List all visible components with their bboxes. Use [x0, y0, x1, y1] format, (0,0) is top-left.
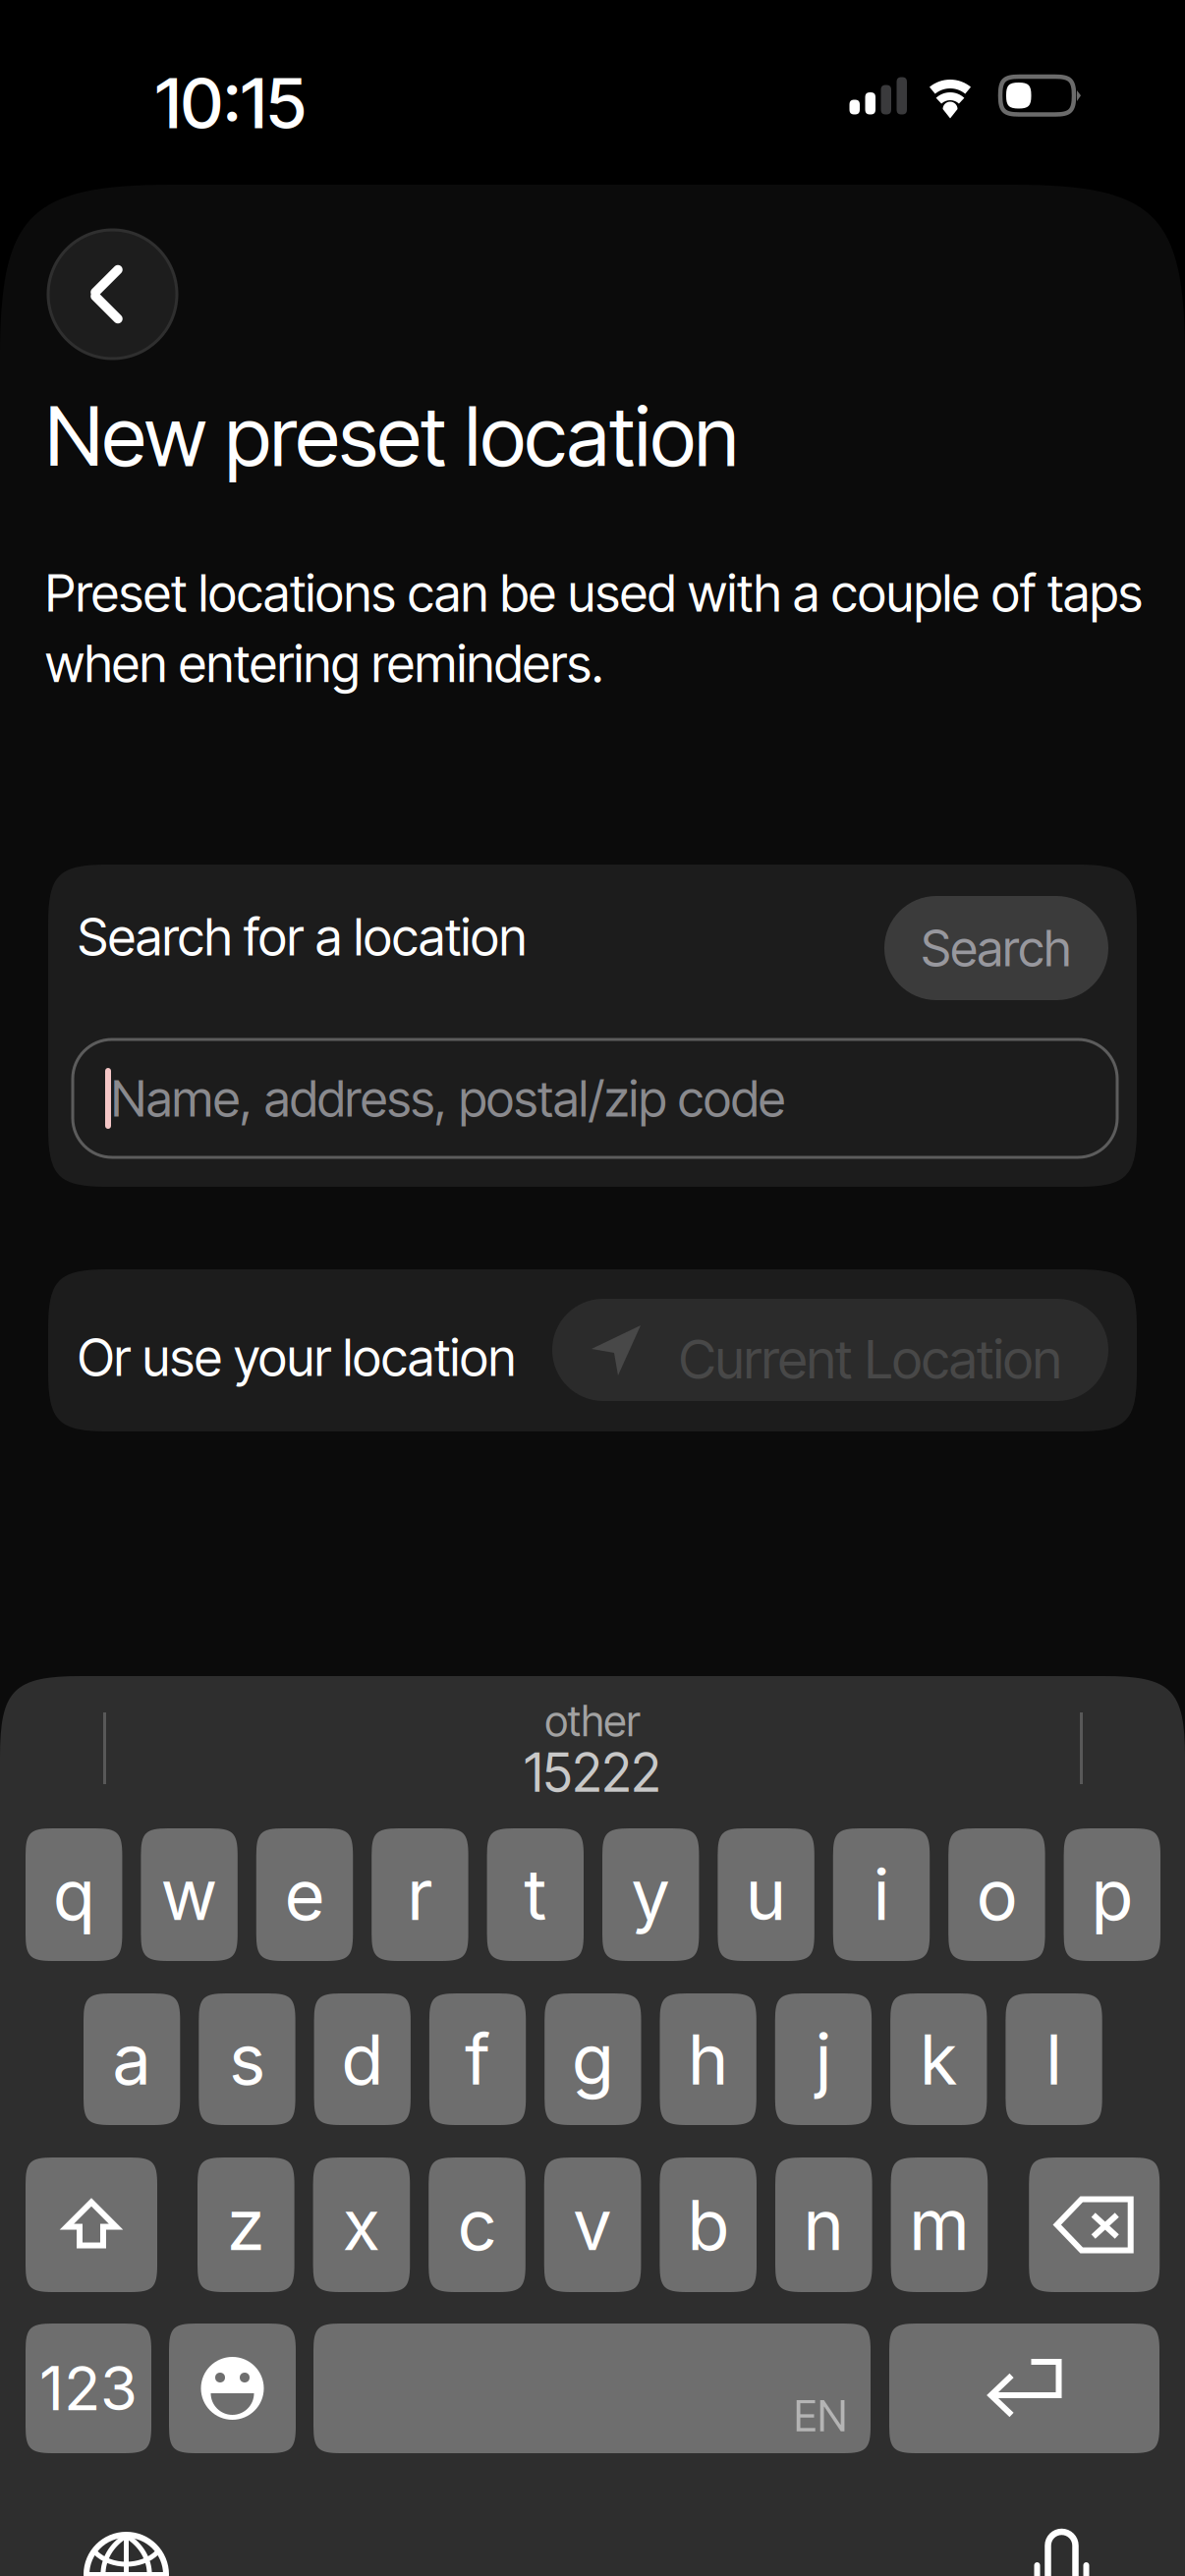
staticText: other [545, 1696, 640, 1746]
button[interactable]: Shift [26, 2157, 157, 2292]
button[interactable]: y [602, 1828, 699, 1961]
staticText: b [687, 2183, 729, 2267]
button[interactable]: u [718, 1828, 814, 1961]
staticText: l [1045, 2017, 1062, 2101]
staticText: Search [921, 918, 1072, 978]
button[interactable]: o [948, 1828, 1045, 1961]
staticText: y [631, 1853, 670, 1937]
button[interactable]: q [26, 1828, 122, 1961]
staticText: Name, address, postal/zip code [111, 1068, 785, 1128]
staticText: 123 [39, 2352, 138, 2425]
staticText: Preset locations can be used with a coup… [45, 562, 1143, 694]
button[interactable]: Dictate [1032, 2529, 1092, 2576]
button[interactable]: d [314, 1993, 411, 2125]
button[interactable]: e [256, 1828, 353, 1961]
button[interactable]: i [833, 1828, 930, 1961]
button[interactable]: 123 [26, 2324, 151, 2453]
staticText: r [407, 1853, 433, 1937]
staticText: h [687, 2017, 729, 2101]
button[interactable]: n [775, 2157, 872, 2292]
button[interactable]: r [372, 1828, 468, 1961]
button[interactable]: s [199, 1993, 295, 2125]
staticText: Or use your location [78, 1326, 516, 1388]
button[interactable]: l [1006, 1993, 1102, 2125]
button[interactable]: h [660, 1993, 756, 2125]
button[interactable]: Current Location [552, 1299, 1108, 1401]
button[interactable]: k [890, 1993, 987, 2125]
button[interactable]: z [197, 2157, 294, 2292]
button[interactable]: f [429, 1993, 526, 2125]
button[interactable]: g [545, 1993, 641, 2125]
staticText: g [572, 2017, 614, 2101]
button[interactable]: Search [884, 896, 1108, 1000]
button[interactable]: Next keyboard [86, 2535, 166, 2576]
staticText: q [53, 1853, 95, 1937]
button[interactable]: Space [313, 2324, 871, 2453]
staticText: x [342, 2183, 381, 2267]
button[interactable]: c [429, 2157, 525, 2292]
button[interactable]: x [313, 2157, 410, 2292]
staticText: New preset location [45, 387, 739, 485]
button[interactable]: p [1064, 1828, 1160, 1961]
button[interactable]: w [141, 1828, 238, 1961]
staticText: p [1091, 1853, 1133, 1937]
staticText: z [227, 2183, 265, 2267]
staticText: a [112, 2017, 152, 2101]
button[interactable]: Back [48, 230, 177, 359]
staticText: v [573, 2183, 612, 2267]
staticText: w [161, 1853, 218, 1937]
staticText: k [919, 2017, 958, 2101]
button[interactable]: a [84, 1993, 180, 2125]
staticText: n [803, 2183, 844, 2267]
staticText: f [465, 2017, 490, 2101]
staticText: EN [794, 2391, 847, 2441]
staticText: 10:15 [155, 61, 307, 145]
button[interactable]: t [487, 1828, 584, 1961]
staticText: u [745, 1853, 787, 1937]
staticText: e [284, 1853, 325, 1937]
staticText: m [909, 2183, 970, 2267]
staticText: s [229, 2017, 265, 2101]
button[interactable]: m [891, 2157, 988, 2292]
button[interactable]: b [660, 2157, 757, 2292]
staticText: c [457, 2183, 497, 2267]
staticText: Current Location [679, 1326, 1061, 1391]
staticText: Search for a location [78, 906, 527, 968]
button[interactable]: v [544, 2157, 641, 2292]
staticText: 15222 [524, 1741, 661, 1804]
button[interactable]: j [775, 1993, 872, 2125]
staticText: d [341, 2017, 383, 2101]
button[interactable]: Return [889, 2324, 1159, 2453]
button[interactable]: Emoji [169, 2324, 296, 2453]
staticText: j [815, 2017, 832, 2101]
staticText: i [873, 1853, 890, 1937]
staticText: t [524, 1853, 547, 1937]
staticText: o [976, 1853, 1017, 1937]
button[interactable]: Delete [1029, 2157, 1160, 2292]
